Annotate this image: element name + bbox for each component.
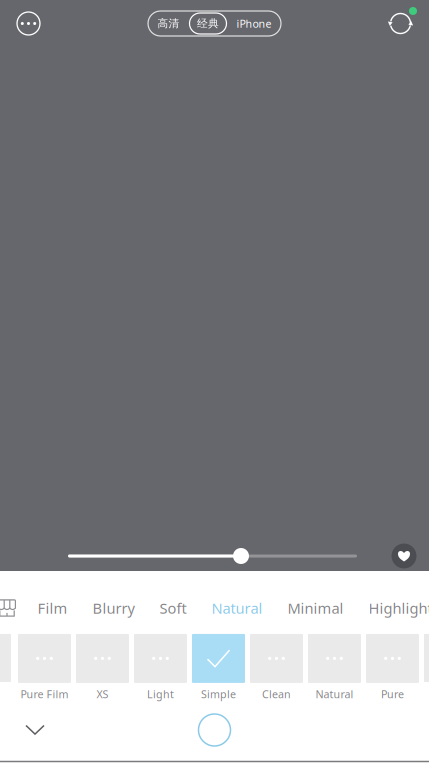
- button[interactable]: Simple: [192, 634, 245, 701]
- button[interactable]: 高清: [147, 13, 189, 34]
- button[interactable]: Pure Film: [18, 634, 71, 701]
- staticText: Light: [147, 687, 174, 701]
- button[interactable]: Highlight: [356, 590, 429, 626]
- button[interactable]: Favorite: [384, 536, 424, 576]
- staticText: Film: [37, 598, 67, 618]
- staticText: 经典: [197, 17, 219, 30]
- staticText: Soft: [159, 598, 186, 618]
- button[interactable]: Clean: [250, 634, 303, 701]
- staticText: 高清: [157, 17, 179, 30]
- staticText: Minimal: [287, 598, 343, 618]
- staticText: XS: [96, 687, 108, 701]
- staticText: iPhone: [236, 16, 271, 31]
- button[interactable]: Film: [25, 590, 80, 626]
- button[interactable]: 经典: [189, 13, 226, 34]
- button[interactable]: Natural: [199, 590, 275, 626]
- staticText: Pure: [381, 687, 404, 701]
- staticText: Natural: [315, 687, 353, 701]
- button[interactable]: Natural: [308, 634, 361, 701]
- button[interactable]: Minimal: [275, 590, 356, 626]
- button[interactable]: Switch camera: [378, 1, 422, 45]
- button[interactable]: Light: [134, 634, 187, 701]
- button[interactable]: Soft: [147, 590, 199, 626]
- button[interactable]: More options: [6, 1, 50, 45]
- button[interactable]: Blurry: [80, 590, 147, 626]
- staticText: Simple: [201, 687, 236, 701]
- button[interactable]: XS: [76, 634, 129, 701]
- button[interactable]: iPhone: [226, 13, 281, 34]
- staticText: Blurry: [92, 598, 134, 618]
- staticText: Pure Film: [20, 687, 68, 701]
- staticText: Highlight: [368, 598, 429, 618]
- button[interactable]: Filter categories: [0, 590, 25, 626]
- staticText: Clean: [262, 687, 291, 701]
- button[interactable]: Capture: [187, 708, 241, 752]
- staticText: Natural: [211, 598, 262, 618]
- button[interactable]: Collapse: [0, 708, 70, 752]
- button[interactable]: Pure: [366, 634, 419, 701]
